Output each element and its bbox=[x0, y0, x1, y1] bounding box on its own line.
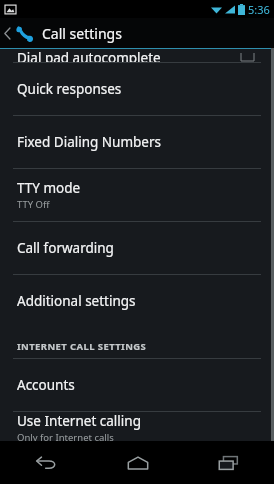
staticText: Accounts bbox=[17, 376, 75, 394]
staticText: TTY mode bbox=[17, 179, 81, 197]
staticText: Quick responses bbox=[17, 80, 122, 98]
button[interactable]: Use Internet calling bbox=[0, 412, 274, 441]
staticText: Only for Internet calls bbox=[17, 431, 114, 441]
staticText: INTERNET CALL SETTINGS bbox=[17, 340, 147, 353]
staticText: 5:36 bbox=[248, 2, 270, 17]
button[interactable]: Call forwarding bbox=[0, 222, 274, 274]
staticText: Fixed Dialing Numbers bbox=[17, 133, 162, 151]
button[interactable]: Additional settings bbox=[0, 275, 274, 327]
staticText: Call forwarding bbox=[17, 239, 114, 257]
staticText: TTY Off bbox=[17, 198, 50, 211]
button[interactable]: Dial pad autocomplete bbox=[0, 49, 274, 62]
staticText: Additional settings bbox=[17, 292, 136, 310]
button[interactable]: Quick responses bbox=[0, 63, 274, 115]
button[interactable]: Fixed Dialing Numbers bbox=[0, 116, 274, 168]
button[interactable]: Accounts bbox=[0, 359, 274, 411]
button[interactable]: Recent apps bbox=[183, 441, 274, 484]
button[interactable]: Navigate up bbox=[0, 18, 37, 48]
button[interactable]: Home bbox=[92, 441, 183, 484]
button[interactable]: Back bbox=[0, 441, 92, 484]
button[interactable]: TTY mode bbox=[0, 169, 274, 221]
staticText: Call settings bbox=[42, 24, 122, 43]
staticText: Dial pad autocomplete bbox=[17, 49, 161, 62]
staticText: Use Internet calling bbox=[17, 412, 141, 430]
